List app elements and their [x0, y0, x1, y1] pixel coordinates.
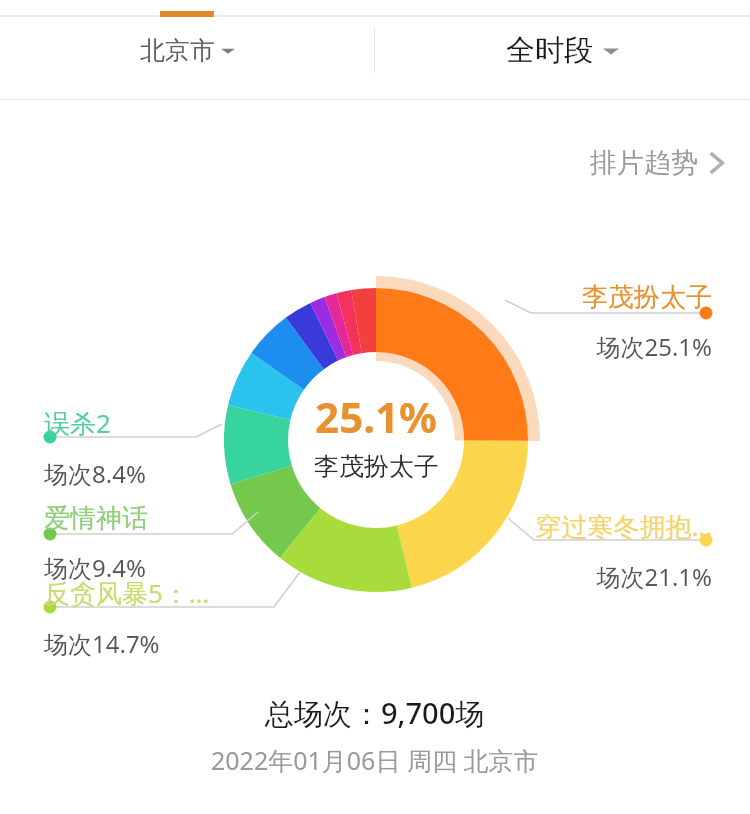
button[interactable]: 误杀2 [44, 405, 324, 490]
staticText: 反贪风暴5：… [44, 575, 210, 611]
button[interactable]: 排片趋势 [584, 140, 732, 186]
staticText: 场次14.7% [44, 627, 160, 660]
staticText: 排片趋势 [590, 146, 698, 180]
button[interactable]: 北京市 [0, 0, 374, 100]
staticText: 场次8.4% [44, 457, 146, 490]
button[interactable]: 穿过寒冬拥抱… [512, 508, 712, 593]
button[interactable]: 全时段 [375, 0, 750, 100]
staticText: 北京市 [140, 35, 215, 66]
button[interactable]: 爱情神话 [44, 502, 324, 584]
staticText: 李茂扮太子 [582, 281, 712, 314]
button[interactable]: 反贪风暴5：… [44, 575, 324, 660]
staticText: 误杀2 [44, 405, 111, 441]
staticText: 李茂扮太子 [314, 451, 439, 482]
staticText: 场次21.1% [596, 560, 712, 593]
staticText: 场次9.4% [44, 551, 146, 584]
staticText: 场次25.1% [596, 330, 712, 363]
staticText: 2022年01月06日 周四 北京市 [211, 743, 539, 777]
button[interactable]: 李茂扮太子 [536, 281, 712, 363]
staticText: 全时段 [506, 32, 593, 69]
staticText: 爱情神话 [44, 502, 148, 535]
staticText: 总场次：9,700场 [265, 693, 485, 733]
staticText: 穿过寒冬拥抱… [535, 508, 712, 544]
staticText: 25.1% [315, 388, 437, 445]
